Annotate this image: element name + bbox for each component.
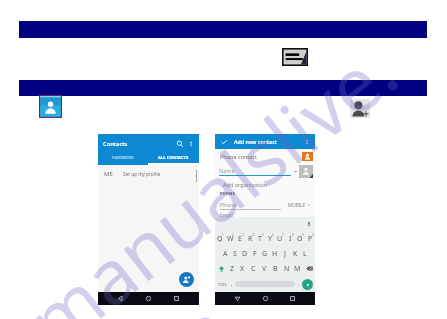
button[interactable]: ALL CONTACTS — [148, 153, 199, 163]
staticText: C — [251, 264, 256, 274]
button[interactable]: S — [230, 246, 240, 261]
button[interactable]: 4 — [245, 231, 255, 246]
button[interactable]: V — [259, 261, 270, 276]
button[interactable]: Add organization — [223, 179, 315, 190]
button[interactable]: 8 — [285, 231, 295, 246]
staticText: Phone — [220, 201, 237, 208]
staticText: ME — [104, 170, 113, 178]
staticText: J — [284, 249, 286, 259]
button[interactable]: X — [237, 261, 248, 276]
staticText: . — [298, 280, 300, 288]
button[interactable]: D — [240, 246, 250, 261]
button[interactable]: ME — [98, 165, 199, 182]
staticText: X — [240, 264, 245, 274]
button[interactable]: 1 — [215, 231, 225, 246]
button[interactable]: 9 — [295, 231, 305, 246]
staticText: W — [227, 234, 234, 244]
button[interactable]: Shift — [215, 261, 227, 276]
staticText: , — [231, 280, 233, 288]
staticText: U — [277, 234, 283, 244]
button[interactable]: Backspace — [303, 261, 315, 276]
button[interactable]: Next — [302, 279, 313, 290]
button[interactable]: Recents — [287, 293, 298, 304]
staticText: Add organization — [223, 181, 268, 188]
staticText: 0 — [312, 233, 314, 237]
staticText: Add new contact — [234, 138, 277, 145]
button[interactable]: C — [248, 261, 259, 276]
staticText: Q — [217, 234, 223, 244]
button[interactable]: B — [270, 261, 281, 276]
staticText: 7 — [282, 233, 284, 237]
button[interactable]: N — [281, 261, 292, 276]
button[interactable]: J — [280, 246, 290, 261]
button[interactable]: Add contact — [179, 272, 194, 287]
staticText: Email — [220, 212, 233, 217]
staticText: 4 — [252, 233, 254, 237]
button[interactable]: 7 — [275, 231, 285, 246]
staticText: Y — [268, 234, 272, 244]
staticText: D — [242, 249, 248, 259]
staticText: O — [297, 234, 303, 244]
button[interactable]: 2 — [225, 231, 235, 246]
staticText: ?123 — [218, 282, 227, 287]
staticText: E — [238, 234, 242, 244]
staticText: Z — [230, 264, 235, 274]
button[interactable]: H — [270, 246, 280, 261]
staticText: 9 — [302, 233, 304, 237]
staticText: 5 — [262, 233, 264, 237]
staticText: T — [258, 234, 262, 244]
button[interactable]: Home — [143, 293, 154, 304]
staticText: F — [253, 249, 257, 259]
staticText: Contacts — [103, 140, 128, 148]
button[interactable]: More options — [187, 140, 195, 148]
button[interactable]: 0 — [305, 231, 315, 246]
button[interactable]: M — [292, 261, 303, 276]
button[interactable]: Z — [227, 261, 237, 276]
staticText: B — [273, 264, 278, 274]
staticText: K — [293, 249, 298, 259]
button[interactable]: F — [250, 246, 260, 261]
staticText: Set up my profile — [123, 171, 161, 177]
staticText: Phone contact — [220, 153, 258, 160]
button[interactable]: Back — [232, 293, 243, 304]
button[interactable]: Phone contact — [220, 149, 313, 163]
staticText: 2 — [232, 233, 234, 237]
staticText: S — [233, 249, 237, 259]
button[interactable]: 5 — [255, 231, 265, 246]
staticText: ALL CONTACTS — [158, 155, 189, 161]
button[interactable]: Recents — [171, 293, 182, 304]
staticText: 8 — [292, 233, 294, 237]
button[interactable]: 3 — [235, 231, 245, 246]
staticText: L — [303, 249, 307, 259]
button[interactable]: Back — [115, 293, 126, 304]
staticText: PHONE — [220, 191, 235, 197]
button[interactable]: K — [290, 246, 300, 261]
staticText: H — [272, 249, 278, 259]
button[interactable]: 6 — [265, 231, 275, 246]
button[interactable]: G — [260, 246, 270, 261]
button[interactable]: ?123 — [217, 282, 228, 287]
staticText: A — [223, 249, 228, 259]
staticText: 3 — [242, 233, 244, 237]
staticText: P — [308, 234, 313, 244]
staticText: N — [284, 264, 290, 274]
button[interactable]: FAVORITES — [98, 153, 148, 163]
staticText: I — [289, 234, 292, 244]
button[interactable]: Home — [260, 293, 271, 304]
button[interactable]: . — [295, 280, 302, 288]
button[interactable]: L — [300, 246, 310, 261]
staticText: V — [262, 264, 267, 274]
button[interactable]: Save — [220, 138, 228, 146]
staticText: 6 — [272, 233, 274, 237]
staticText: G — [262, 249, 268, 259]
staticText: R — [248, 234, 253, 244]
staticText: FAVORITES — [112, 155, 134, 161]
button[interactable]: , — [228, 280, 235, 288]
button[interactable]: Search — [175, 139, 185, 149]
staticText: manualslive.com — [6, 16, 447, 319]
button[interactable]: A — [220, 246, 230, 261]
staticText: M — [294, 264, 301, 274]
button[interactable]: More options — [303, 138, 311, 146]
staticText: Name — [219, 167, 235, 174]
